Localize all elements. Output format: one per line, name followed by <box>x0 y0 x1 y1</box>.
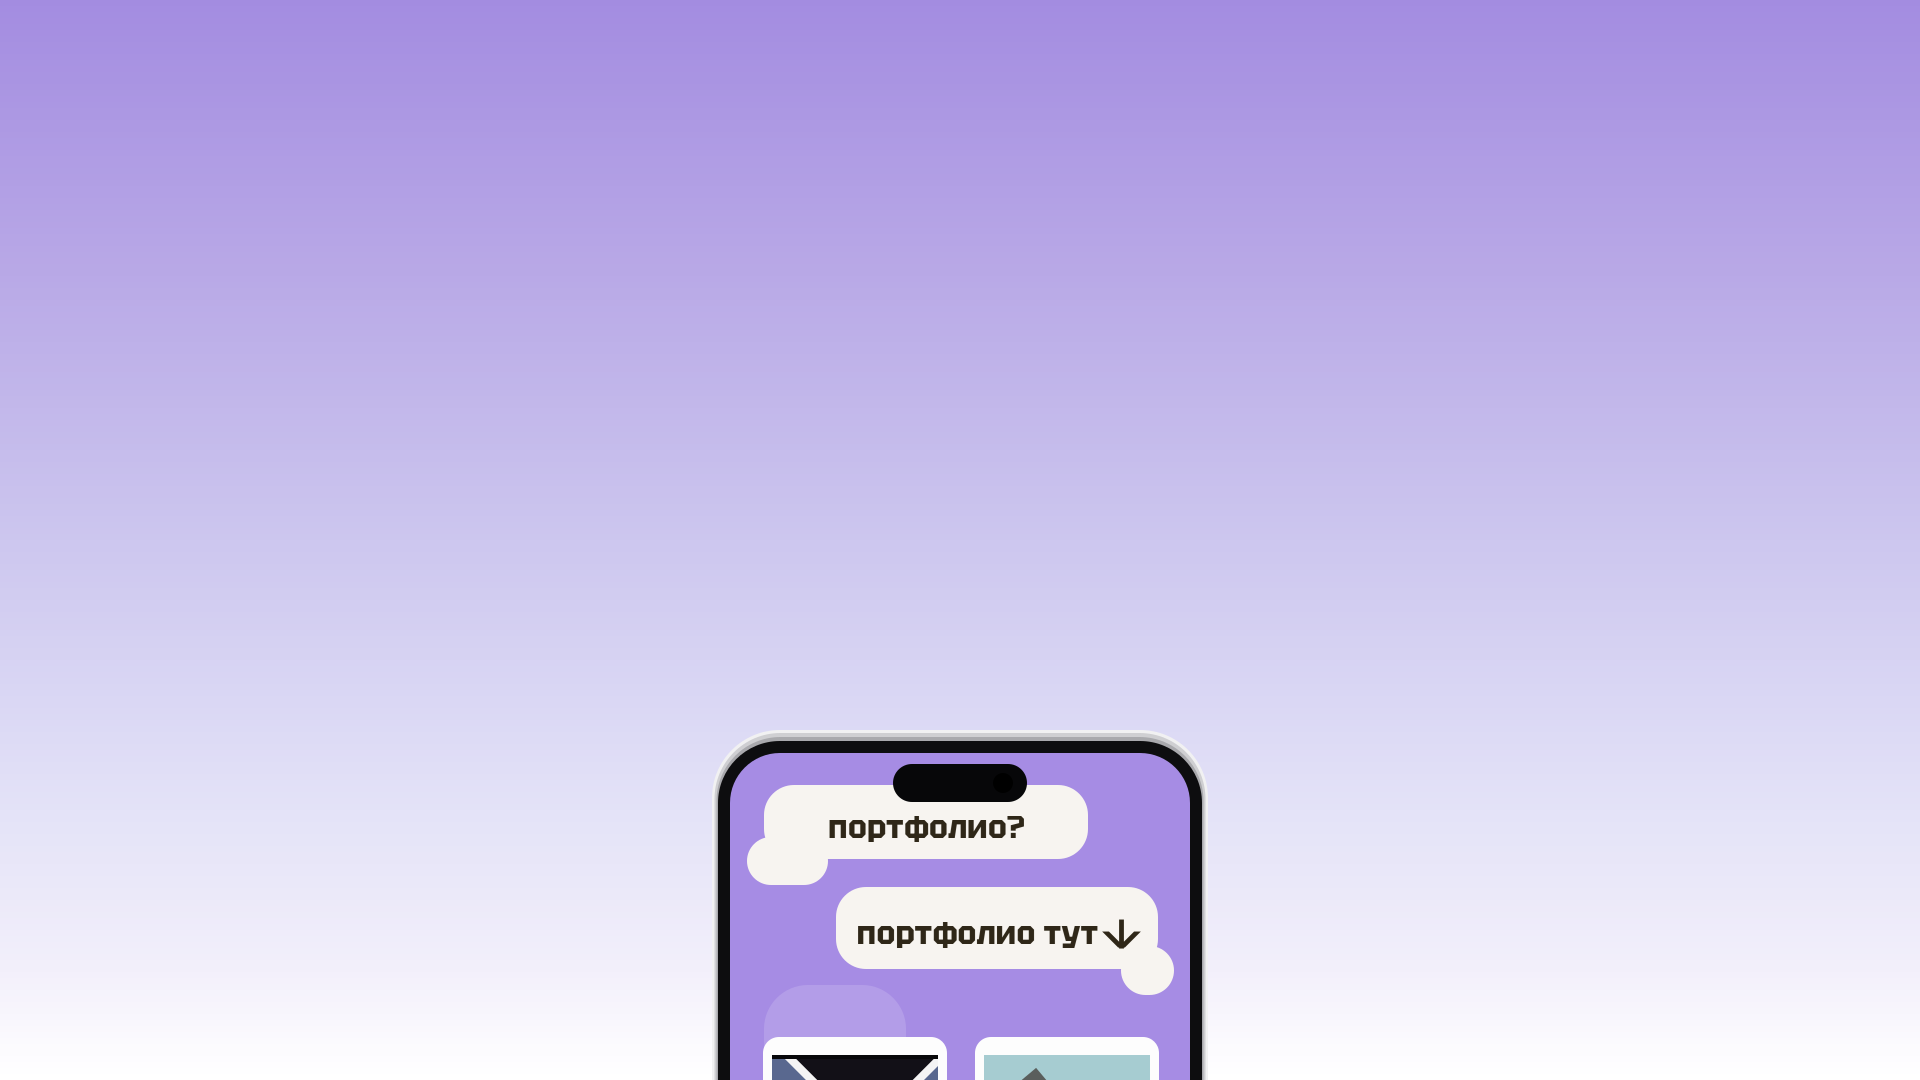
staticText: портфолио тут <box>856 913 1098 953</box>
staticText: портфолио? <box>828 807 1024 847</box>
